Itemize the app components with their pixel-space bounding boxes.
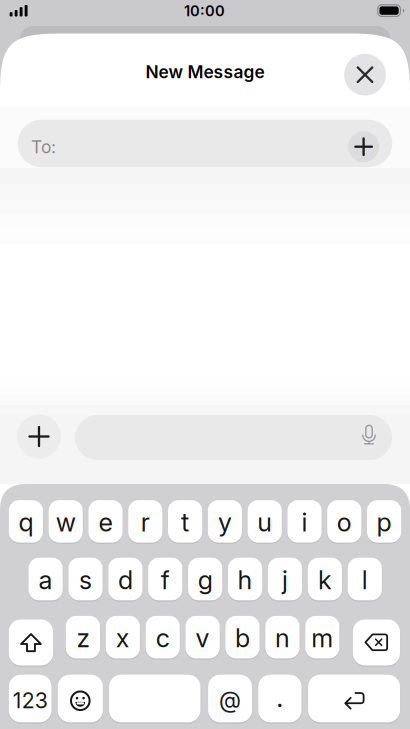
- button[interactable]: Space: [109, 675, 200, 722]
- button[interactable]: Dictate: [360, 424, 378, 446]
- button[interactable]: e: [88, 500, 123, 543]
- button[interactable]: m: [305, 616, 339, 658]
- staticText: t: [181, 507, 189, 537]
- button[interactable]: o: [327, 500, 361, 543]
- staticText: 123: [13, 688, 48, 713]
- staticText: To:: [31, 137, 56, 157]
- button[interactable]: f: [148, 558, 182, 600]
- button[interactable]: w: [49, 500, 83, 543]
- button[interactable]: Delete: [353, 619, 400, 665]
- button[interactable]: @: [208, 675, 252, 722]
- staticText: i: [301, 507, 307, 537]
- button[interactable]: i: [287, 500, 322, 543]
- staticText: f: [161, 565, 170, 595]
- button[interactable]: To:: [18, 120, 392, 167]
- staticText: z: [76, 623, 89, 653]
- button[interactable]: Message: [75, 415, 392, 460]
- staticText: b: [235, 623, 250, 653]
- staticText: w: [56, 507, 76, 537]
- button[interactable]: z: [66, 616, 100, 658]
- button[interactable]: v: [185, 616, 220, 658]
- button[interactable]: h: [228, 558, 262, 600]
- button[interactable]: a: [28, 558, 63, 600]
- button[interactable]: Add Attachment: [17, 414, 61, 458]
- staticText: y: [218, 507, 232, 537]
- button[interactable]: Shift: [9, 619, 53, 665]
- staticText: c: [156, 623, 170, 653]
- button[interactable]: x: [106, 616, 140, 658]
- button[interactable]: u: [248, 500, 282, 543]
- staticText: d: [118, 565, 133, 595]
- button[interactable]: l: [348, 558, 382, 600]
- staticText: r: [141, 507, 150, 537]
- button[interactable]: q: [9, 500, 43, 543]
- staticText: p: [377, 507, 392, 537]
- button[interactable]: s: [68, 558, 103, 600]
- button[interactable]: Period: [258, 675, 301, 722]
- button[interactable]: Return: [308, 675, 400, 722]
- button[interactable]: g: [188, 558, 222, 600]
- button[interactable]: c: [146, 616, 180, 658]
- staticText: o: [337, 507, 352, 537]
- staticText: n: [275, 623, 290, 653]
- button[interactable]: j: [268, 558, 302, 600]
- button[interactable]: t: [168, 500, 202, 543]
- button[interactable]: r: [128, 500, 162, 543]
- staticText: h: [238, 565, 253, 595]
- staticText: l: [362, 565, 368, 595]
- button[interactable]: Close: [344, 54, 386, 96]
- staticText: q: [18, 507, 33, 537]
- button[interactable]: d: [108, 558, 142, 600]
- button[interactable]: Add Contact: [348, 131, 379, 162]
- staticText: m: [311, 623, 333, 653]
- staticText: New Message: [145, 62, 264, 82]
- button[interactable]: k: [308, 558, 342, 600]
- staticText: a: [39, 565, 53, 595]
- staticText: u: [257, 507, 272, 537]
- button[interactable]: Emoji: [58, 675, 103, 722]
- staticText: v: [196, 623, 210, 653]
- staticText: g: [198, 565, 213, 595]
- button[interactable]: n: [265, 616, 299, 658]
- button[interactable]: y: [208, 500, 242, 543]
- button[interactable]: p: [367, 500, 401, 543]
- button[interactable]: 123: [9, 675, 51, 722]
- staticText: 10:00: [184, 2, 225, 20]
- staticText: s: [79, 565, 92, 595]
- staticText: k: [318, 565, 332, 595]
- staticText: e: [98, 507, 112, 537]
- staticText: @: [219, 686, 241, 713]
- staticText: j: [282, 565, 288, 595]
- staticText: x: [116, 623, 130, 653]
- button[interactable]: b: [225, 616, 260, 658]
